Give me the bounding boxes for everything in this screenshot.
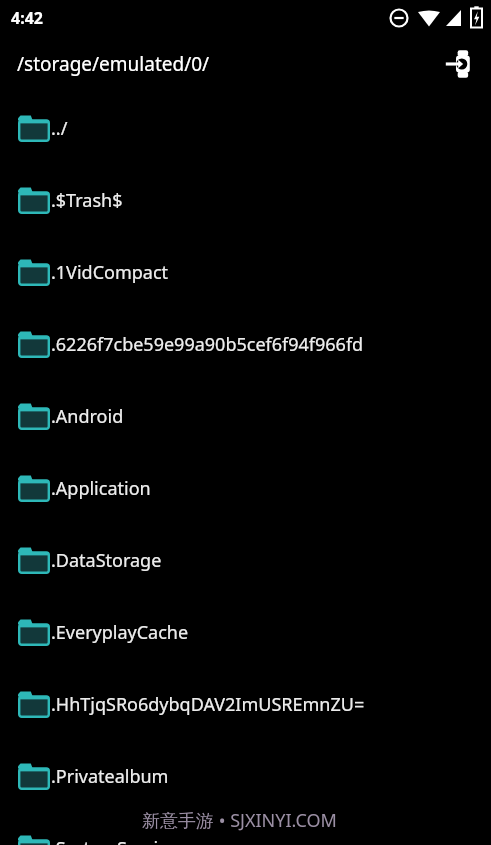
staticText: 新意手游 • SJXINYI.COM (142, 808, 337, 833)
staticText: /storage/emulated/0/ (17, 51, 210, 77)
staticText: .6226f7cbe59e99a90b5cef6f94f966fd (51, 332, 364, 357)
button[interactable]: .Android (0, 380, 491, 452)
staticText: .SystemService (51, 836, 178, 845)
button[interactable]: .EveryplayCache (0, 596, 491, 668)
button[interactable]: ../ (0, 92, 491, 164)
button[interactable]: Send to watch (437, 42, 481, 86)
staticText: .Android (51, 404, 124, 429)
button[interactable]: .DataStorage (0, 524, 491, 596)
staticText: .HhTjqSRo6dybqDAV2ImUSREmnZU= (51, 692, 365, 717)
staticText: .Privatealbum (51, 764, 169, 789)
staticText: .Application (51, 476, 151, 501)
button[interactable]: .$Trash$ (0, 164, 491, 236)
staticText: .EveryplayCache (51, 620, 189, 645)
staticText: .DataStorage (51, 548, 162, 573)
button[interactable]: .HhTjqSRo6dybqDAV2ImUSREmnZU= (0, 668, 491, 740)
button[interactable]: .6226f7cbe59e99a90b5cef6f94f966fd (0, 308, 491, 380)
button[interactable]: .Privatealbum (0, 740, 491, 812)
button[interactable]: .1VidCompact (0, 236, 491, 308)
staticText: .$Trash$ (51, 188, 123, 213)
button[interactable]: .SystemService (0, 812, 491, 845)
button[interactable]: .Application (0, 452, 491, 524)
staticText: 4:42 (11, 7, 43, 29)
staticText: ../ (51, 116, 68, 141)
staticText: .1VidCompact (51, 260, 169, 285)
